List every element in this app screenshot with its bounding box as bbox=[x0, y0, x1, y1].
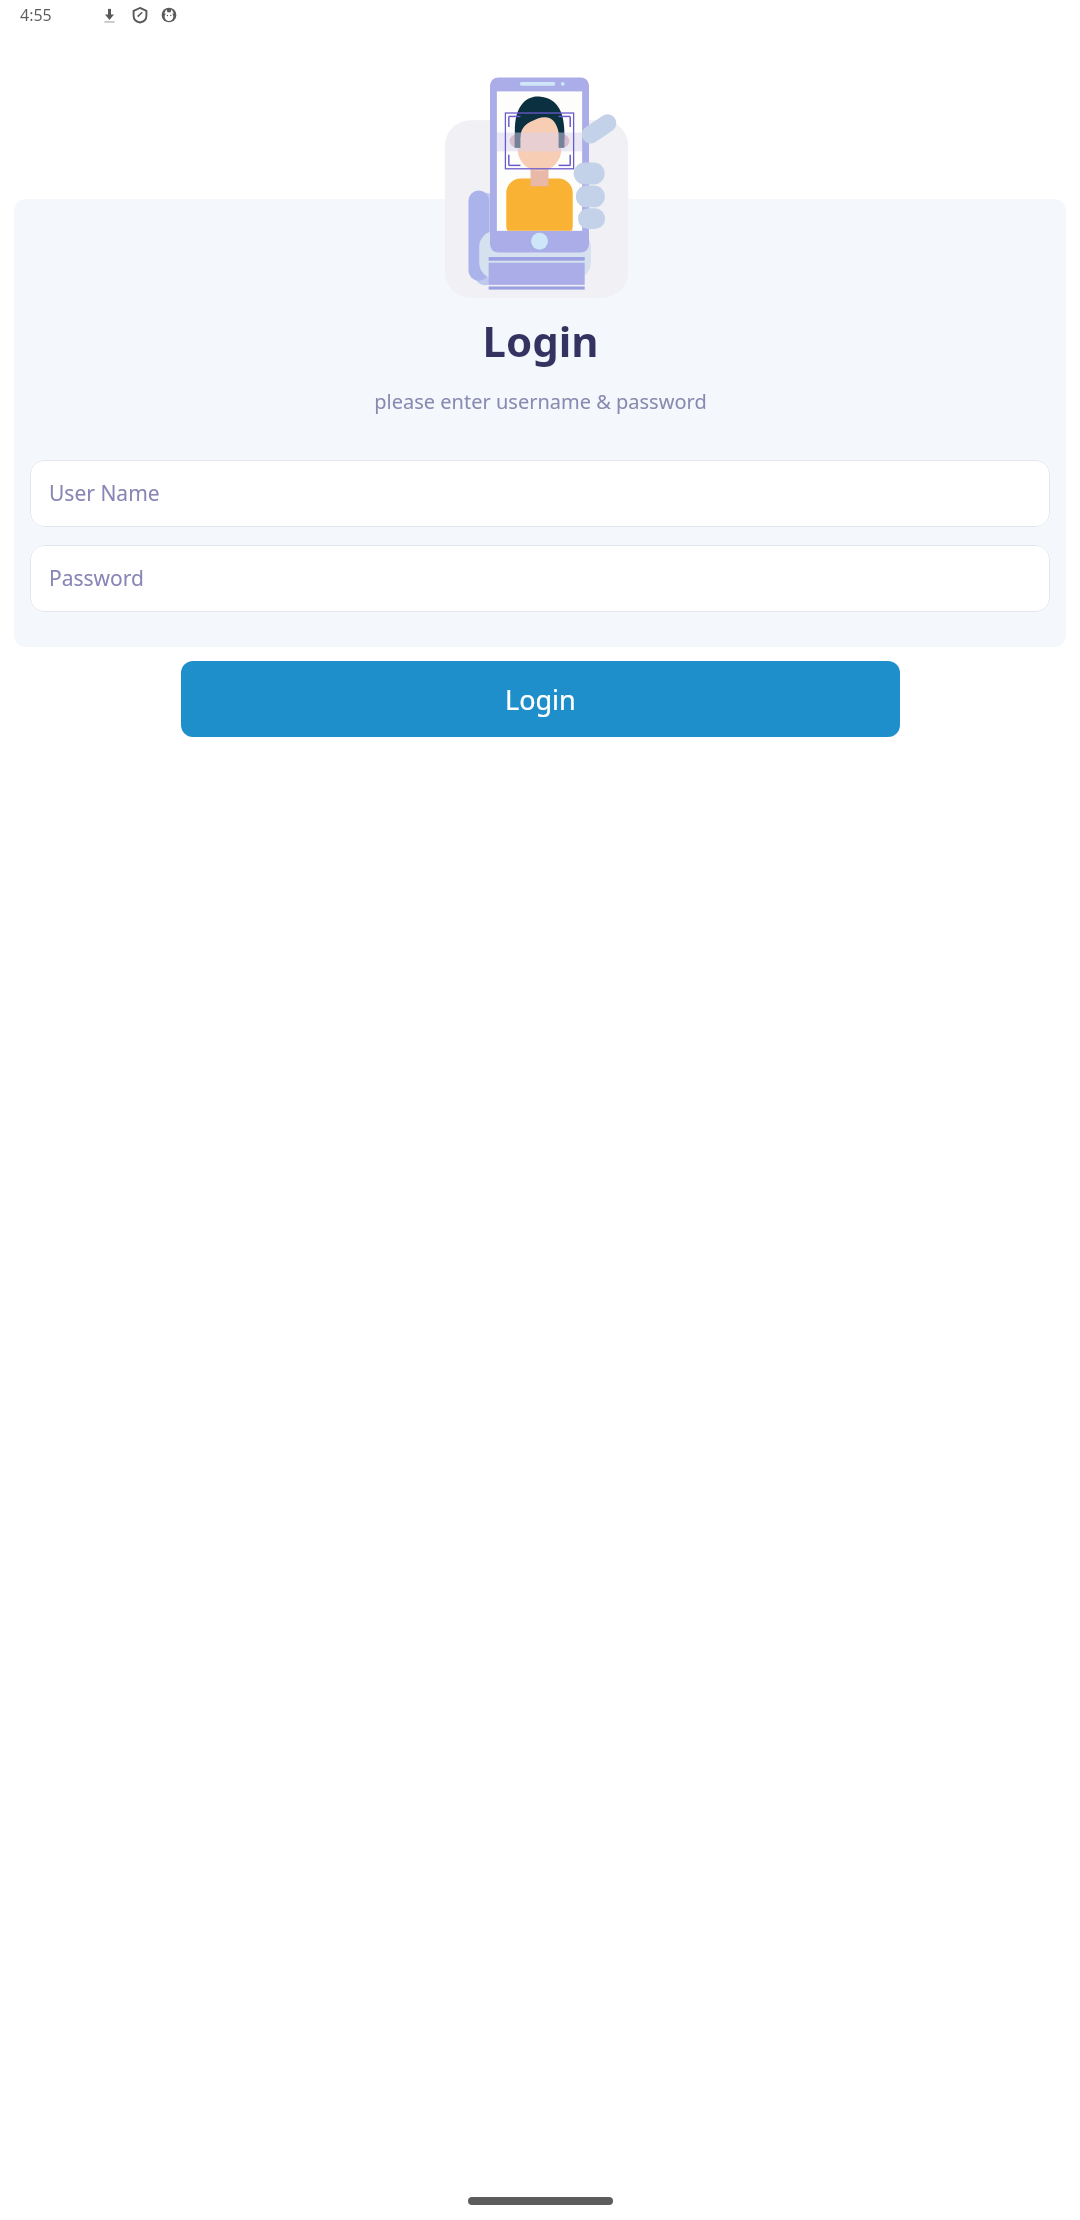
button[interactable]: Password bbox=[30, 545, 1050, 612]
staticText: Password bbox=[49, 564, 144, 593]
other: Face login illustration bbox=[442, 74, 638, 300]
staticText: 4:55 bbox=[20, 4, 52, 26]
button[interactable]: Login bbox=[181, 661, 900, 737]
staticText: Login bbox=[505, 681, 576, 718]
staticText: User Name bbox=[49, 479, 160, 508]
staticText: please enter username & password bbox=[374, 388, 707, 415]
staticText: Login bbox=[482, 312, 599, 369]
other: Home bbox=[468, 2197, 613, 2205]
button[interactable]: User Name bbox=[30, 460, 1050, 527]
